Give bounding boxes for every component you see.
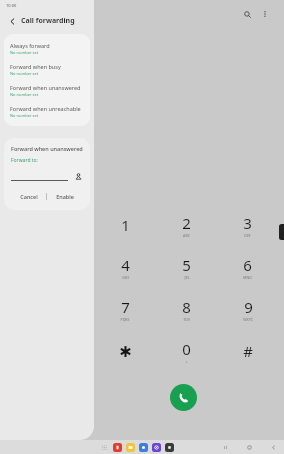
button[interactable]: 8 [156,288,217,330]
button[interactable]: App 4 [165,443,174,452]
button[interactable]: Back [6,15,18,27]
staticText: Always forward [10,42,50,49]
staticText: 7 [121,297,130,317]
button[interactable]: ✱ [94,330,156,372]
button[interactable]: 6 [217,246,278,288]
staticText: WXYZ [243,317,253,322]
staticText: 0 [182,339,191,359]
button[interactable]: 7 [94,288,156,330]
staticText: Forward when unanswered [11,145,83,152]
staticText: Forward when unreachable [10,105,81,112]
staticText: PQRS [120,317,130,322]
staticText: No number set [10,50,39,55]
button[interactable]: Search [240,7,254,21]
staticText: GHI [122,275,129,280]
button[interactable]: Forward when unanswered [4,80,90,101]
staticText: Call forwarding [21,16,75,26]
button[interactable]: 0 [156,330,217,372]
staticText: DEF [244,233,251,238]
staticText: No number set [10,71,39,76]
button[interactable]: Back [268,442,278,452]
staticText: 5 [182,255,191,275]
staticText: 3 [243,213,252,233]
button[interactable]: Enable [47,190,83,203]
staticText: Forward when busy [10,63,61,70]
staticText: MNO [243,275,252,280]
button[interactable]: 4 [94,246,156,288]
staticText: Forward to: [11,157,38,164]
staticText: No number set [10,92,39,97]
staticText: 8 [182,297,191,317]
staticText: JKL [184,275,190,280]
staticText: ABC [183,233,190,238]
staticText: 6 [243,255,252,275]
staticText: 4 [121,255,130,275]
staticText: Cancel [20,193,38,200]
staticText: + [185,359,188,364]
staticText: Enable [56,193,74,200]
staticText: 10:00 [6,3,17,8]
button[interactable]: 2 [156,204,217,246]
button[interactable]: Cancel [11,190,46,203]
button[interactable]: Home [244,442,254,452]
button[interactable]: App 3 [152,443,161,452]
button[interactable]: Forward when busy [4,59,90,80]
button[interactable]: 3 [217,204,278,246]
button[interactable]: 9 [217,288,278,330]
button[interactable]: # [217,330,278,372]
staticText: Forward when unanswered [10,84,81,91]
staticText: ✱ [119,343,132,360]
staticText: No number set [10,113,39,118]
button[interactable]: 5 [156,246,217,288]
button[interactable]: Recent apps [220,442,230,452]
staticText: # [243,341,253,361]
button[interactable]: App 2 [139,443,148,452]
staticText: TUV [183,317,190,322]
button[interactable]: More options [258,7,272,21]
button[interactable]: Always forward [4,38,90,59]
button[interactable]: Pick contact [74,172,83,181]
button[interactable]: Forward when unreachable [4,101,90,122]
button[interactable]: Apps [100,443,109,452]
button[interactable]: App 0 [113,443,122,452]
button[interactable]: Call [170,384,197,411]
staticText: 2 [182,213,191,233]
button[interactable]: 1 [94,204,156,246]
button[interactable]: App 1 [126,443,135,452]
staticText: 9 [244,297,253,317]
staticText: 1 [121,215,130,235]
